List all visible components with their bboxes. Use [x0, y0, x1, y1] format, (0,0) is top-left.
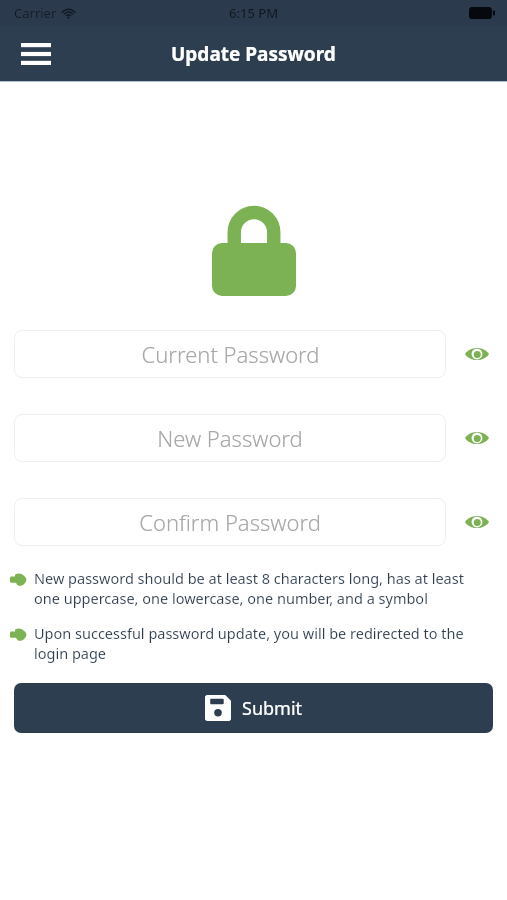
button[interactable]: Confirm Password: [14, 498, 446, 546]
staticText: Current Password: [141, 339, 320, 369]
staticText: 6:15 PM: [229, 4, 279, 22]
staticText: Carrier: [14, 4, 57, 22]
staticText: Upon successful password update, you wil…: [34, 623, 485, 664]
staticText: Submit: [242, 696, 303, 721]
staticText: New password should be at least 8 charac…: [34, 568, 485, 609]
staticText: Confirm Password: [139, 507, 321, 537]
button[interactable]: New Password: [14, 414, 446, 462]
button[interactable]: Menu: [14, 32, 58, 76]
button[interactable]: Show password: [446, 330, 507, 378]
button[interactable]: Show password: [446, 498, 507, 546]
button[interactable]: Show password: [446, 414, 507, 462]
staticText: New Password: [157, 423, 303, 453]
button[interactable]: Current Password: [14, 330, 446, 378]
staticText: Update Password: [171, 41, 336, 67]
button[interactable]: Submit: [14, 683, 493, 733]
